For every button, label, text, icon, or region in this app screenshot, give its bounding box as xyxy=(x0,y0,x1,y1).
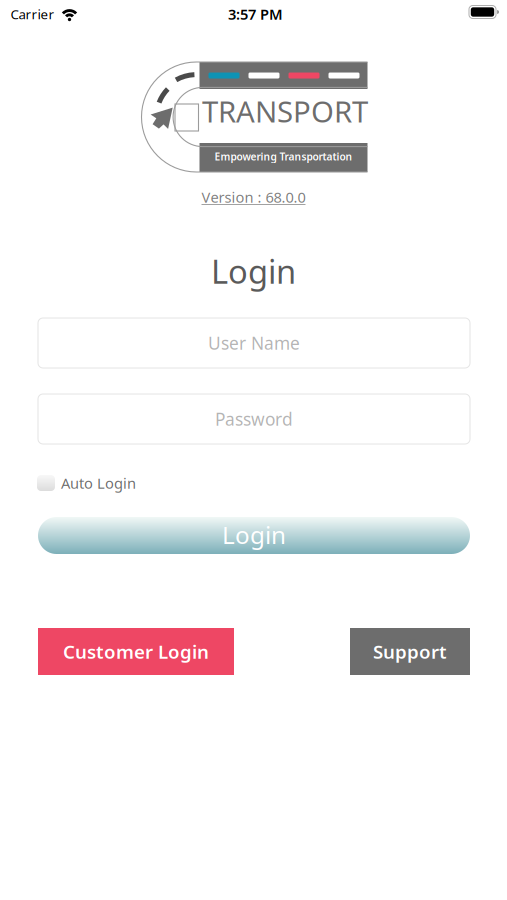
button[interactable]: Auto Login xyxy=(37,472,157,494)
staticText: TRANSPORT xyxy=(202,91,368,130)
staticText: Login xyxy=(211,249,296,293)
button[interactable]: Customer Login xyxy=(38,628,234,675)
staticText: Auto Login xyxy=(61,473,136,493)
staticText: Version : 68.0.0 xyxy=(201,187,305,207)
staticText: Empowering Transportation xyxy=(214,150,352,163)
staticText: Support xyxy=(373,639,447,664)
staticText: Customer Login xyxy=(63,639,209,664)
staticText: User Name xyxy=(208,331,300,354)
button[interactable]: Support xyxy=(350,628,470,675)
staticText: 3:57 PM xyxy=(228,4,283,24)
staticText: Carrier xyxy=(10,5,54,23)
staticText: Login xyxy=(222,518,286,551)
button[interactable]: Login xyxy=(38,517,470,554)
staticText: Password xyxy=(215,407,293,430)
